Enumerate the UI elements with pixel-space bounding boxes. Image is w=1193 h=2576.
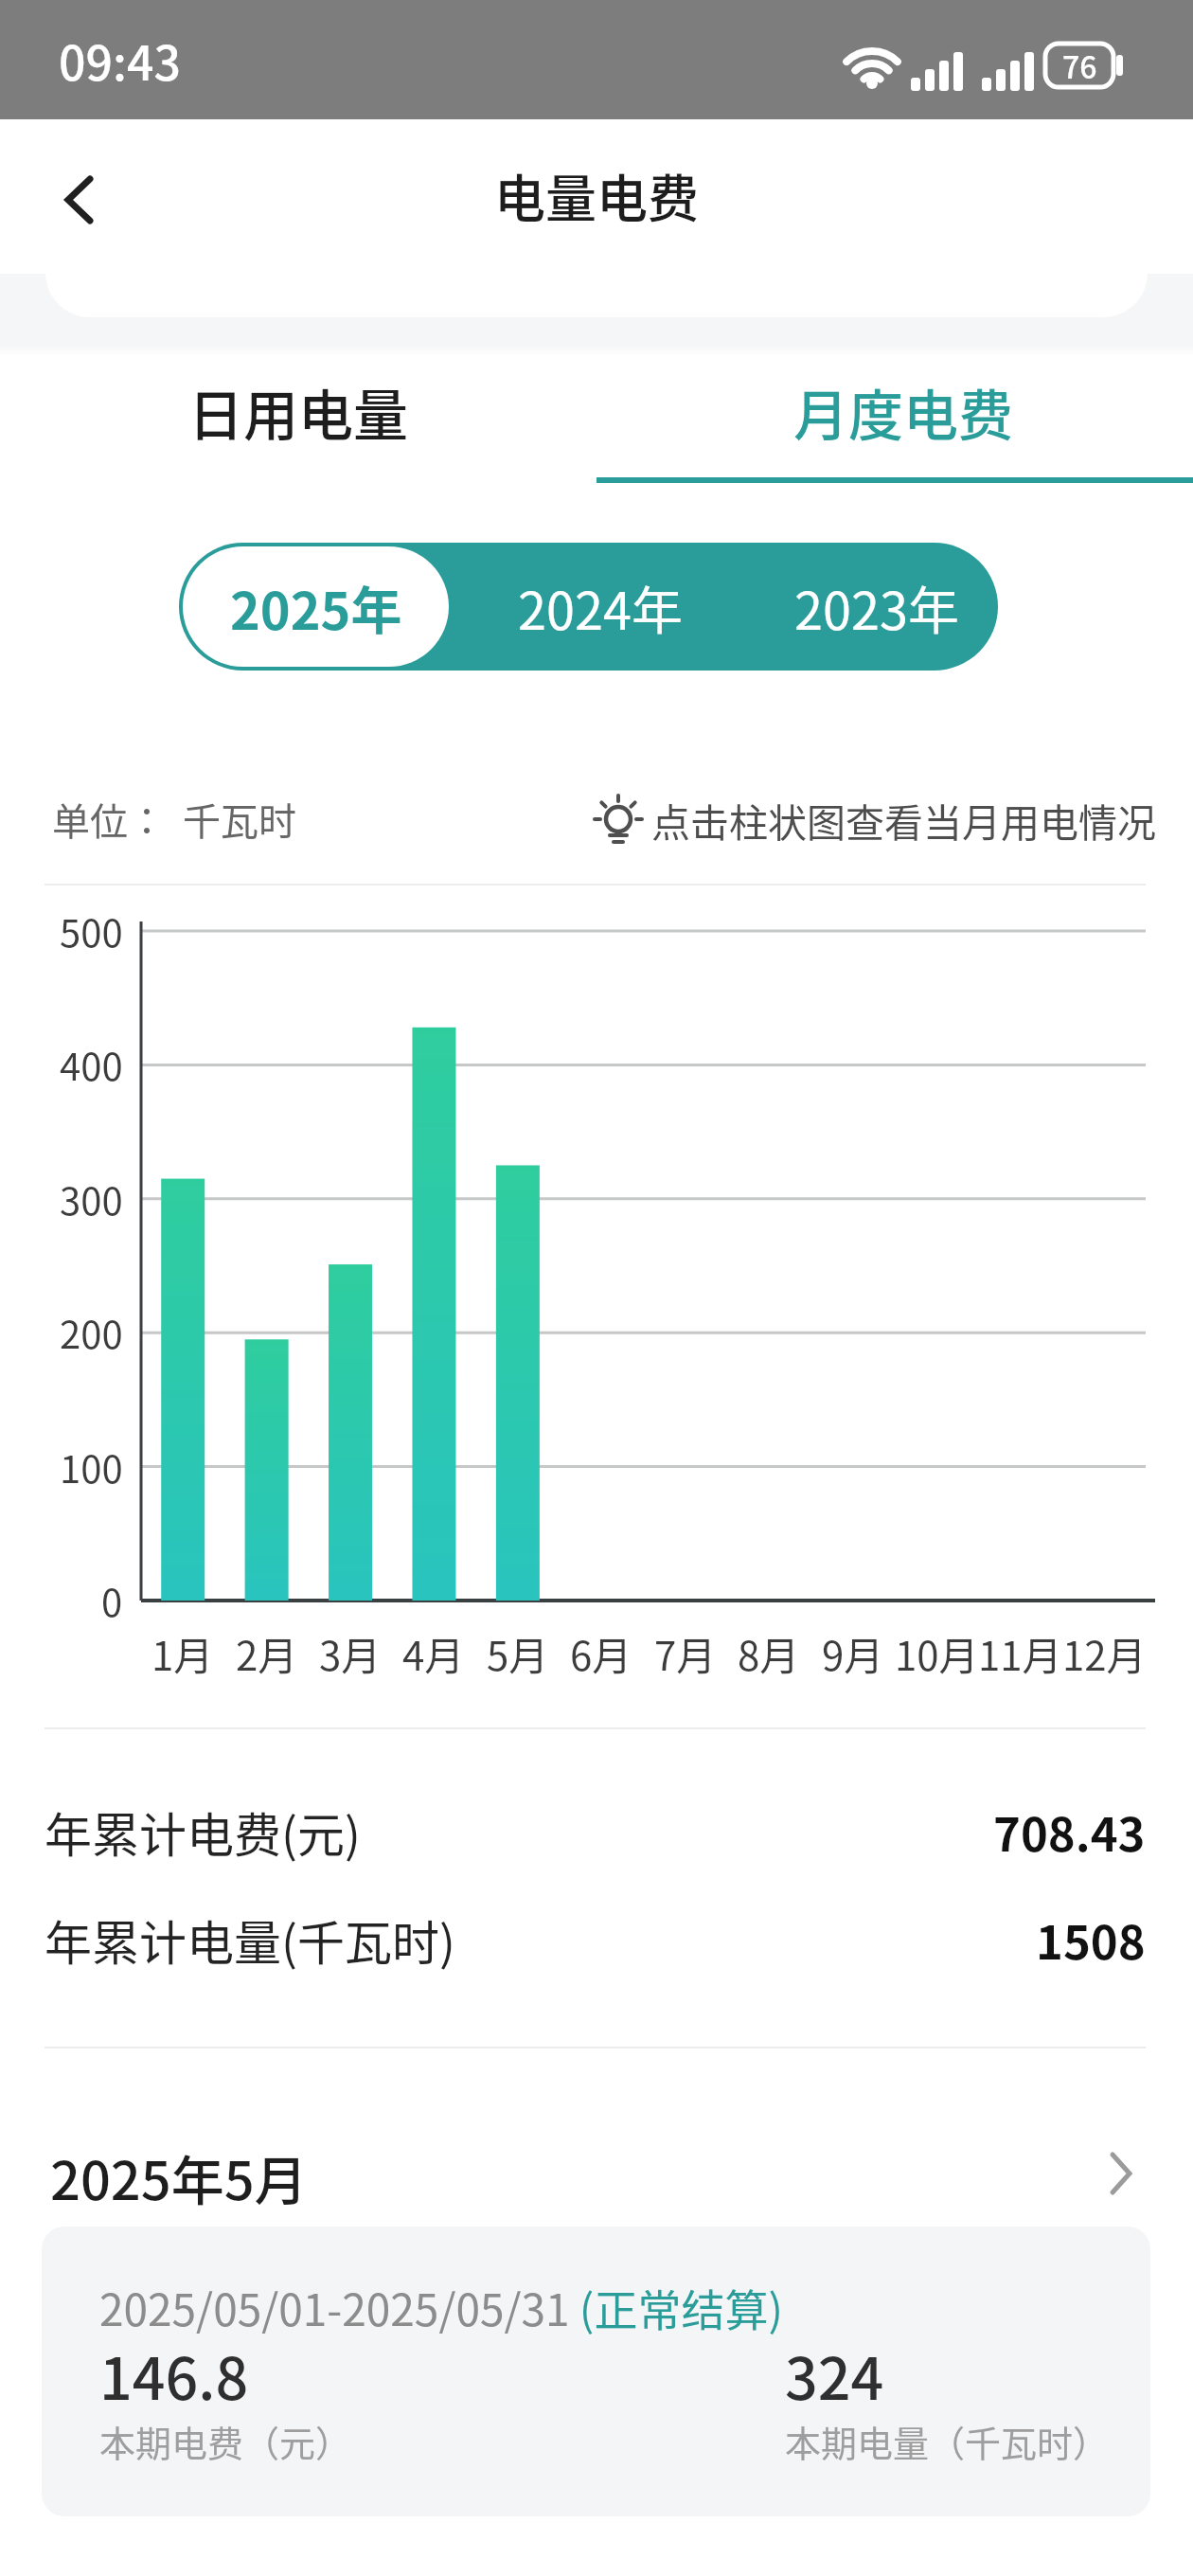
staticText: 146.8 xyxy=(99,2333,249,2416)
staticText: 1508 xyxy=(1036,1905,1146,1972)
button[interactable]: 2025/05/01-2025/05/31 (正常结算) xyxy=(42,2227,1150,2516)
staticText: 年累计电费(元) xyxy=(45,1798,361,1864)
staticText: 8月 xyxy=(738,1624,800,1682)
staticText: 300 xyxy=(60,1172,123,1226)
button[interactable]: 月度电费 xyxy=(596,341,1193,483)
button[interactable]: 2023年 xyxy=(725,543,998,671)
staticText: 09:43 xyxy=(59,26,181,94)
staticText: 400 xyxy=(60,1037,123,1092)
staticText: 年累计电量(千瓦时) xyxy=(45,1905,455,1972)
staticText: 12月 xyxy=(1062,1624,1147,1682)
staticText: 日用电量 xyxy=(188,372,409,452)
staticText: 708.43 xyxy=(993,1798,1146,1864)
staticText: 2月 xyxy=(236,1624,298,1682)
staticText: 3月 xyxy=(319,1624,382,1682)
staticText: 2025/05/01-2025/05/31 (正常结算) xyxy=(99,2276,783,2334)
button[interactable]: 日用电量 xyxy=(0,341,596,483)
staticText: 9月 xyxy=(822,1624,884,1682)
staticText: 2024年 xyxy=(518,570,683,644)
staticText: 本期电量（千瓦时） xyxy=(785,2415,1110,2467)
button[interactable]: 2025年5月 xyxy=(50,2138,1143,2209)
staticText: 月度电费 xyxy=(793,372,1014,452)
staticText: 500 xyxy=(60,903,123,958)
staticText: 100 xyxy=(60,1440,123,1494)
staticText: 76 xyxy=(1062,44,1097,87)
staticText: 10月 xyxy=(895,1624,979,1682)
staticText: 单位： 千瓦时 xyxy=(52,792,296,847)
button[interactable]: 2024年 xyxy=(453,543,725,671)
button[interactable]: 2025年 xyxy=(183,546,449,667)
staticText: 11月 xyxy=(978,1624,1062,1682)
staticText: 2023年 xyxy=(794,570,959,644)
staticText: 200 xyxy=(60,1305,123,1360)
staticText: 2025年 xyxy=(230,570,402,644)
button[interactable] xyxy=(38,162,114,238)
staticText: 0 xyxy=(101,1573,123,1628)
staticText: 电量电费 xyxy=(494,158,699,232)
staticText: 6月 xyxy=(570,1624,632,1682)
staticText: 4月 xyxy=(402,1624,465,1682)
staticText: 点击柱状图查看当月用电情况 xyxy=(651,792,1156,848)
staticText: 2025年5月 xyxy=(50,2138,308,2209)
staticText: 7月 xyxy=(654,1624,717,1682)
button[interactable]: 年累计电量(千瓦时) xyxy=(45,1905,1146,1972)
staticText: 5月 xyxy=(487,1624,549,1682)
button[interactable]: 年累计电费(元) xyxy=(45,1798,1146,1864)
staticText: 324 xyxy=(785,2333,884,2416)
staticText: 本期电费（元） xyxy=(99,2415,352,2467)
staticText: 1月 xyxy=(151,1624,214,1682)
